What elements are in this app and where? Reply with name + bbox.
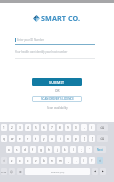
button[interactable]: Emoji (9, 168, 15, 175)
button[interactable]: q (1, 135, 7, 142)
button[interactable]: z (9, 157, 15, 164)
button[interactable]: ' (86, 146, 92, 153)
button[interactable]: Right (100, 168, 106, 175)
button[interactable]: u (49, 135, 55, 142)
staticText: [ (84, 137, 85, 141)
button[interactable]: k (62, 146, 68, 153)
staticText: u (51, 137, 53, 141)
staticText: 0 (75, 126, 77, 130)
button[interactable]: j (54, 146, 60, 153)
button[interactable]: SUBMIT (32, 78, 82, 86)
staticText: OR (55, 89, 60, 93)
staticText: m (59, 159, 62, 163)
button[interactable]: Next (94, 146, 106, 153)
staticText: SUBMIT (49, 80, 65, 85)
staticText: n (51, 159, 53, 163)
button[interactable]: Settings (17, 168, 23, 175)
button[interactable]: w (9, 135, 15, 142)
staticText: 1 (3, 126, 5, 130)
staticText: SMART CO. (41, 13, 81, 23)
button[interactable]: f (30, 146, 36, 153)
button[interactable]: - (81, 124, 87, 131)
button[interactable]: / (89, 124, 95, 131)
staticText: q (3, 137, 5, 141)
staticText: p (75, 137, 77, 141)
button[interactable]: 5 (33, 124, 39, 131)
button[interactable]: Left (92, 168, 98, 175)
button[interactable]: x (17, 157, 23, 164)
button[interactable]: Shift (97, 157, 103, 164)
staticText: Next (97, 148, 103, 152)
button[interactable]: SCAN DRIVER'S LICENCE (32, 96, 82, 102)
staticText: t (35, 137, 37, 141)
button[interactable]: . (73, 157, 79, 164)
button[interactable]: 4 (25, 124, 31, 131)
button[interactable]: y (41, 135, 47, 142)
staticText: English (US) (51, 170, 65, 173)
button[interactable]: t (33, 135, 39, 142)
button[interactable]: / (81, 157, 87, 164)
staticText: Enter your ID Number (17, 38, 45, 42)
staticText: ; (81, 148, 82, 152)
staticText: z (11, 159, 13, 163)
button[interactable]: n (49, 157, 55, 164)
button[interactable]: l (70, 146, 76, 153)
staticText: v (35, 159, 37, 163)
button[interactable]: [ (81, 135, 87, 142)
button[interactable]: , (65, 157, 71, 164)
button[interactable]: v (33, 157, 39, 164)
staticText: ? (91, 159, 93, 163)
staticText: a (8, 148, 10, 152)
button[interactable]: Space (25, 168, 90, 175)
button[interactable]: g (38, 146, 44, 153)
staticText: 4 (27, 126, 29, 130)
staticText: ] (92, 137, 93, 141)
button[interactable]: 9 (65, 124, 71, 131)
button[interactable]: Shift (1, 157, 7, 164)
button[interactable]: 2 (9, 124, 15, 131)
button[interactable]: o (65, 135, 71, 142)
button[interactable]: r (25, 135, 31, 142)
staticText: Scan availability (47, 106, 68, 110)
button[interactable]: m (57, 157, 63, 164)
button[interactable]: Symbols (1, 168, 7, 175)
staticText: / (91, 126, 93, 130)
button[interactable]: ] (89, 135, 95, 142)
button[interactable]: 8 (57, 124, 63, 131)
button[interactable]: a (6, 146, 12, 153)
staticText: c (27, 159, 29, 163)
button[interactable]: Enter your ID Number (15, 38, 95, 45)
staticText: 9 (67, 126, 69, 130)
button[interactable]: 3 (17, 124, 23, 131)
button[interactable]: b (41, 157, 47, 164)
button[interactable]: d (22, 146, 28, 153)
button[interactable]: i (57, 135, 63, 142)
button[interactable]: Delete (97, 135, 108, 142)
staticText: , (68, 159, 69, 163)
button[interactable]: c (25, 157, 31, 164)
staticText: ▶ (102, 170, 104, 173)
staticText: 3 (19, 126, 21, 130)
button[interactable]: Backspace (97, 124, 108, 131)
button[interactable]: s (14, 146, 20, 153)
staticText: s (16, 148, 18, 152)
button[interactable]: 0 (73, 124, 79, 131)
button[interactable]: Your health care identify your host numb… (15, 49, 95, 59)
staticText: - (84, 126, 85, 130)
staticText: ⇧ (3, 159, 6, 162)
staticText: r (27, 137, 29, 141)
button[interactable]: p (73, 135, 79, 142)
staticText: w (11, 137, 14, 141)
staticText: g (40, 148, 42, 152)
button[interactable]: 1 (1, 124, 7, 131)
button[interactable]: ; (78, 146, 84, 153)
button[interactable]: ? (89, 157, 95, 164)
button[interactable]: e (17, 135, 23, 142)
button[interactable]: 7 (49, 124, 55, 131)
staticText: j (57, 148, 58, 152)
staticText: d (24, 148, 26, 152)
button[interactable]: h (46, 146, 52, 153)
staticText: ' (89, 148, 90, 152)
button[interactable]: 6 (41, 124, 47, 131)
staticText: 8 (59, 126, 61, 130)
